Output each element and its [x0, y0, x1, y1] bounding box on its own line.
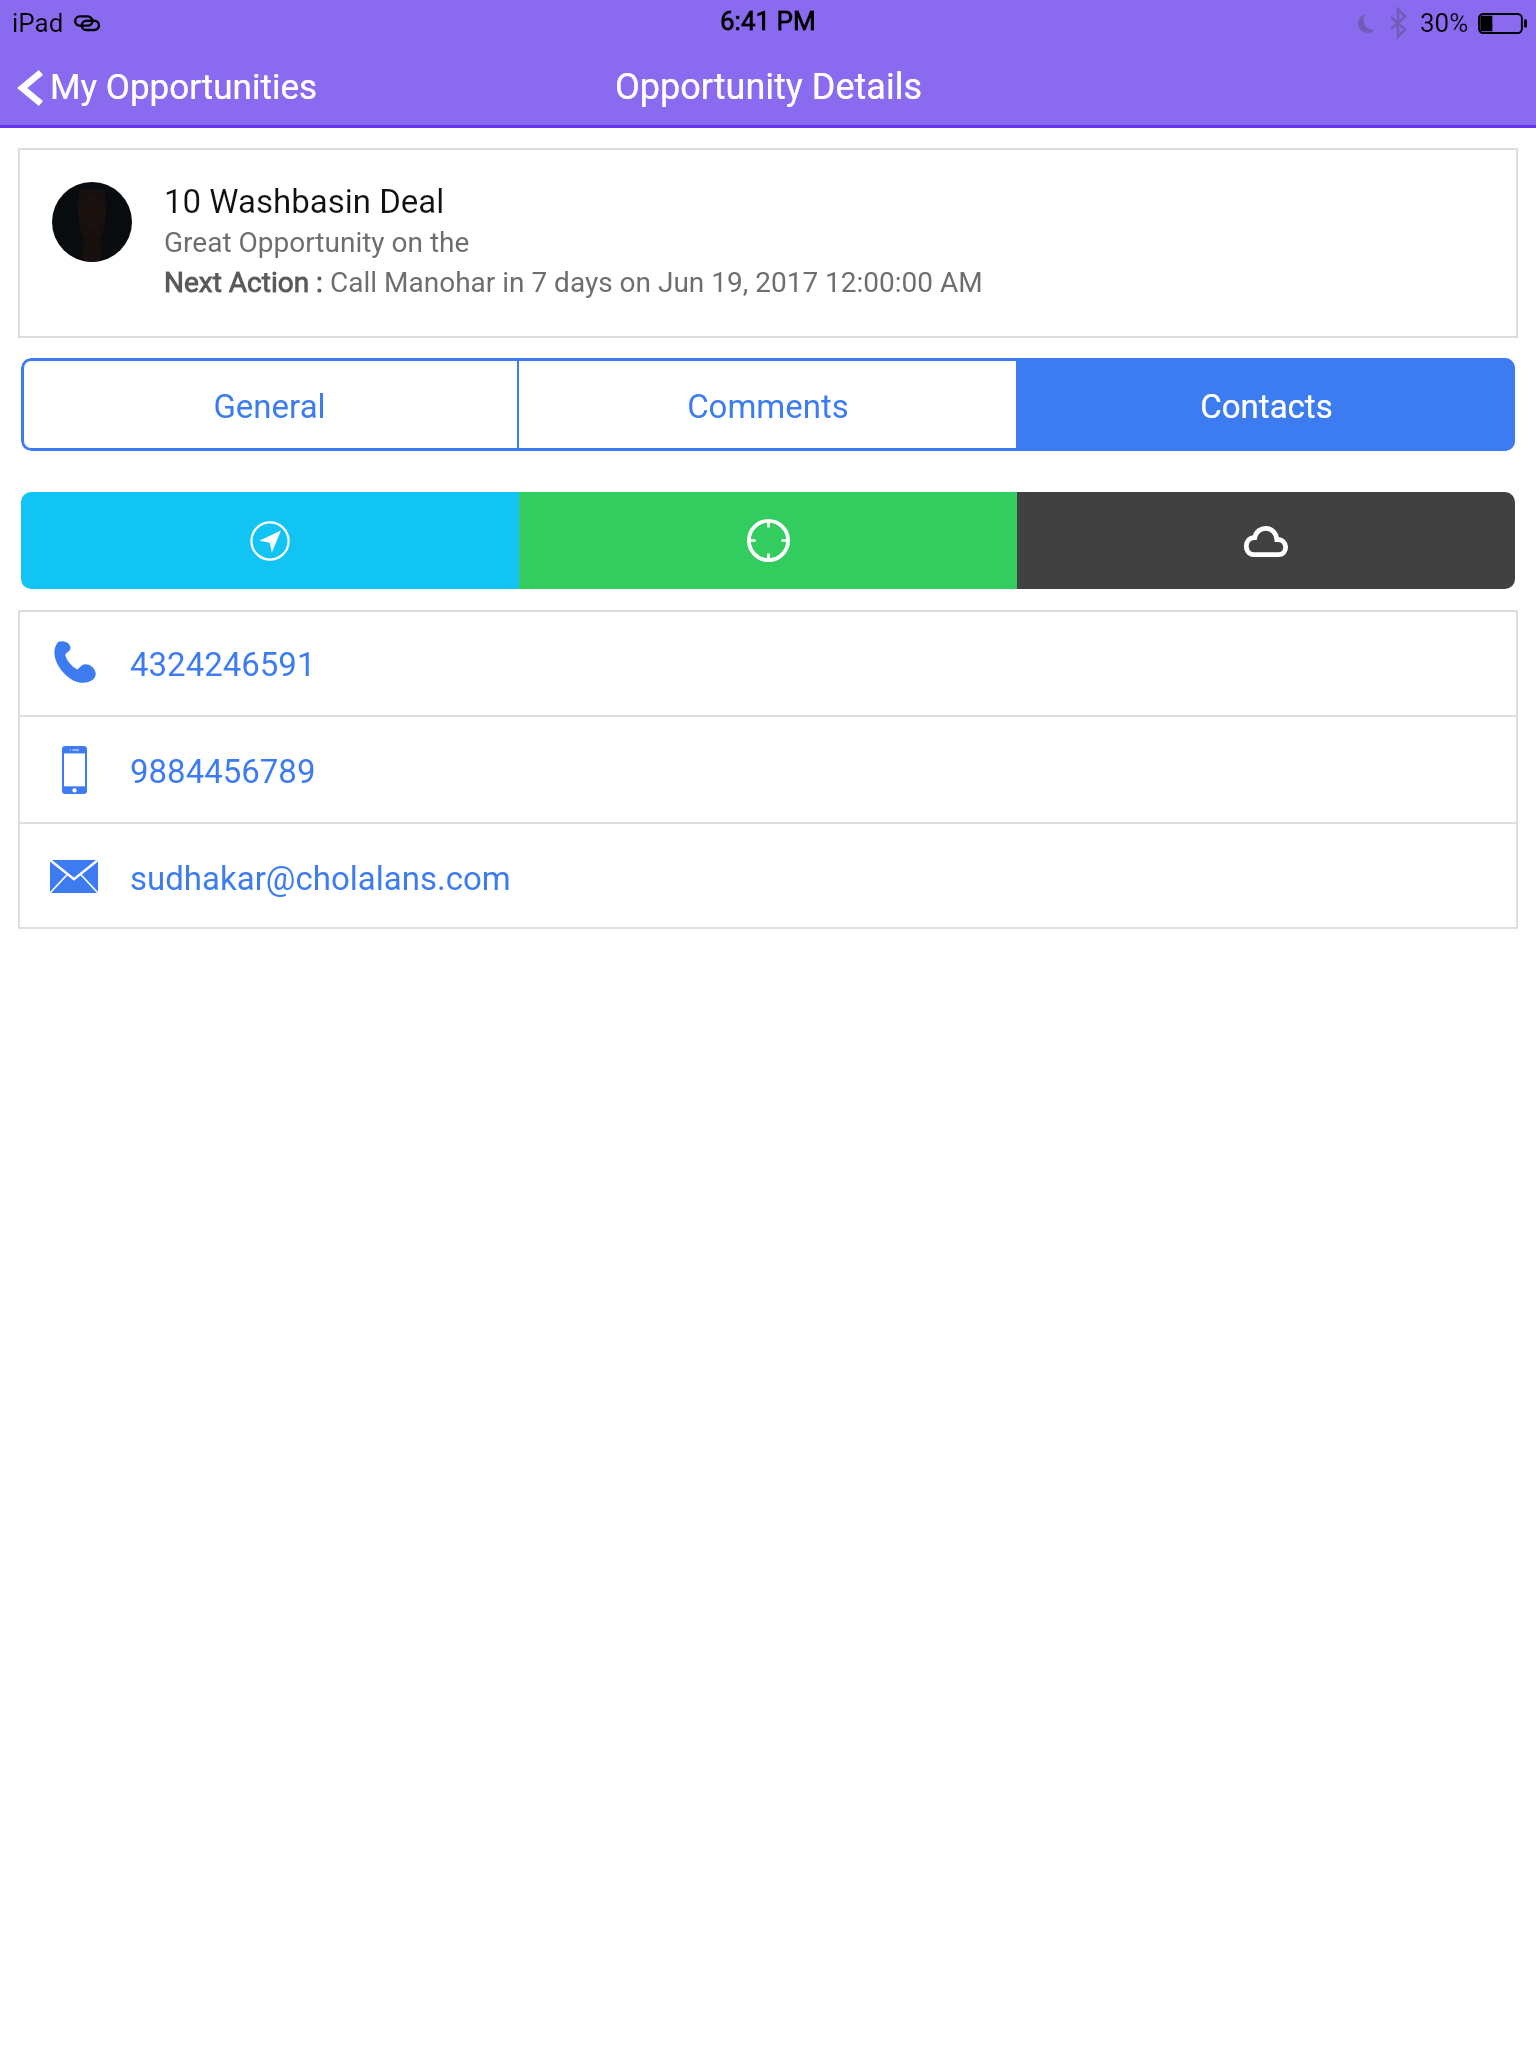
button[interactable]: Contacts	[1018, 358, 1515, 451]
staticText: Contacts	[1200, 387, 1333, 426]
staticText: Comments	[687, 387, 849, 426]
button[interactable]: Navigate	[21, 492, 519, 589]
button[interactable]: sudhakar@cholalans.com	[18, 824, 1518, 929]
button[interactable]: 10 Washbasin Deal	[18, 148, 1518, 338]
button[interactable]: My Opportunities	[0, 57, 336, 118]
staticText: Next Action :	[164, 266, 330, 299]
staticText: Call Manohar in 7 days on Jun 19, 2017 1…	[330, 266, 983, 299]
staticText: iPad	[12, 8, 64, 38]
button[interactable]: Cloud sync	[1017, 492, 1515, 589]
button[interactable]: General	[21, 358, 517, 451]
staticText: General	[213, 387, 326, 426]
button[interactable]: 9884456789	[18, 717, 1518, 822]
staticText: 10 Washbasin Deal	[164, 182, 445, 221]
staticText: 30%	[1420, 8, 1469, 38]
staticText: 6:41 PM	[720, 6, 816, 36]
staticText: 4324246591	[130, 645, 316, 684]
staticText: Opportunity Details	[615, 66, 922, 108]
staticText: sudhakar@cholalans.com	[130, 859, 511, 898]
staticText: Great Opportunity on the	[164, 226, 470, 259]
button[interactable]: Comments	[519, 358, 1016, 451]
staticText: 9884456789	[130, 752, 316, 791]
button[interactable]: Locate	[519, 492, 1017, 589]
button[interactable]: 4324246591	[18, 610, 1518, 715]
staticText: My Opportunities	[50, 67, 318, 108]
